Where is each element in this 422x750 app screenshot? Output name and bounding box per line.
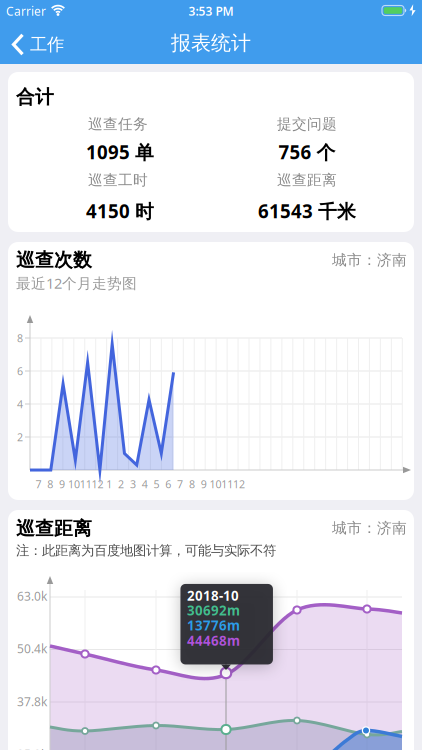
staticText: 4 <box>17 397 23 411</box>
staticText: 2018-10 <box>187 587 239 604</box>
staticText: 城市：济南 <box>332 251 407 269</box>
staticText: 37.8k <box>17 693 47 709</box>
staticText: 12 <box>233 477 245 491</box>
staticText: 巡查次数 <box>16 248 92 271</box>
staticText: 6 <box>165 477 171 491</box>
staticText: 2 <box>118 477 124 491</box>
staticText: 13776m <box>187 616 240 634</box>
button[interactable]: 城市：济南 <box>332 519 407 537</box>
staticText: 61543 千米 <box>258 199 356 223</box>
staticText: 10 <box>68 477 80 491</box>
staticText: 城市：济南 <box>332 519 407 537</box>
staticText: 10 <box>209 477 221 491</box>
staticText: 最近12个月走势图 <box>16 273 137 293</box>
staticText: 1 <box>106 477 112 491</box>
staticText: 11 <box>221 477 233 491</box>
staticText: 8 <box>17 331 23 345</box>
staticText: 6 <box>17 364 23 378</box>
staticText: 12 <box>91 477 103 491</box>
staticText: 7 <box>177 477 183 491</box>
staticText: 3 <box>130 477 136 491</box>
staticText: 63.0k <box>17 588 47 604</box>
staticText: 注：此距离为百度地图计算，可能与实际不符 <box>16 542 276 559</box>
staticText: 3:53 PM <box>188 3 233 19</box>
staticText: 提交问题 <box>277 115 337 133</box>
staticText: 巡查距离 <box>16 517 92 540</box>
staticText: 7 <box>35 477 41 491</box>
staticText: 巡查任务 <box>88 115 148 133</box>
staticText: 25.2k <box>17 746 47 750</box>
staticText: 11 <box>80 477 92 491</box>
staticText: 合计 <box>16 85 54 108</box>
staticText: Carrier <box>6 3 46 19</box>
staticText: 巡查距离 <box>277 171 337 189</box>
staticText: 工作 <box>30 34 64 55</box>
staticText: 30692m <box>187 601 240 619</box>
staticText: 50.4k <box>17 640 47 656</box>
staticText: 9 <box>201 477 207 491</box>
staticText: 8 <box>189 477 195 491</box>
staticText: 756 个 <box>278 140 335 164</box>
staticText: 2 <box>17 430 23 444</box>
button[interactable]: 工作 <box>11 22 91 66</box>
staticText: 44468m <box>187 632 240 649</box>
staticText: 9 <box>59 477 65 491</box>
button[interactable]: 城市：济南 <box>332 251 407 269</box>
staticText: 4 <box>142 477 148 491</box>
staticText: 5 <box>153 477 159 491</box>
staticText: 1095 单 <box>86 140 154 164</box>
staticText: 4150 时 <box>86 199 154 223</box>
staticText: 报表统计 <box>171 31 251 55</box>
staticText: 巡查工时 <box>88 171 148 189</box>
staticText: 8 <box>47 477 53 491</box>
